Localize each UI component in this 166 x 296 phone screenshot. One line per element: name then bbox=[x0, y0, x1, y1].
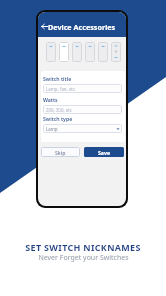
staticText: Device Accessories bbox=[48, 22, 116, 32]
staticText: Lamp, fan, etc bbox=[46, 86, 76, 92]
staticText: SET SWITCH NICKNAMES bbox=[25, 241, 141, 253]
button[interactable]: Switch type bbox=[85, 42, 95, 62]
staticText: Switch type bbox=[43, 115, 73, 122]
staticText: 200, 300, etc bbox=[46, 107, 72, 113]
button[interactable]: Switch type bbox=[72, 42, 82, 62]
staticText: Switch title bbox=[43, 75, 72, 82]
button[interactable]: Switch type bbox=[46, 42, 56, 62]
staticText: Watts bbox=[43, 96, 58, 103]
staticText: Never Forget your Switches bbox=[38, 253, 129, 263]
button[interactable]: Back bbox=[39, 21, 49, 31]
button[interactable]: Dimmer switch bbox=[111, 42, 121, 62]
button[interactable]: Skip bbox=[41, 147, 80, 157]
button[interactable]: Lamp, fan, etc bbox=[43, 84, 122, 93]
button[interactable]: 200, 300, etc bbox=[43, 105, 122, 114]
staticText: Lamp bbox=[46, 126, 58, 132]
button[interactable]: Switch type bbox=[59, 42, 69, 62]
staticText: Save bbox=[98, 149, 111, 156]
button[interactable]: Save bbox=[84, 147, 124, 157]
staticText: Skip bbox=[55, 149, 66, 156]
button[interactable]: Lamp bbox=[43, 124, 122, 133]
button[interactable]: Switch type bbox=[98, 42, 108, 62]
